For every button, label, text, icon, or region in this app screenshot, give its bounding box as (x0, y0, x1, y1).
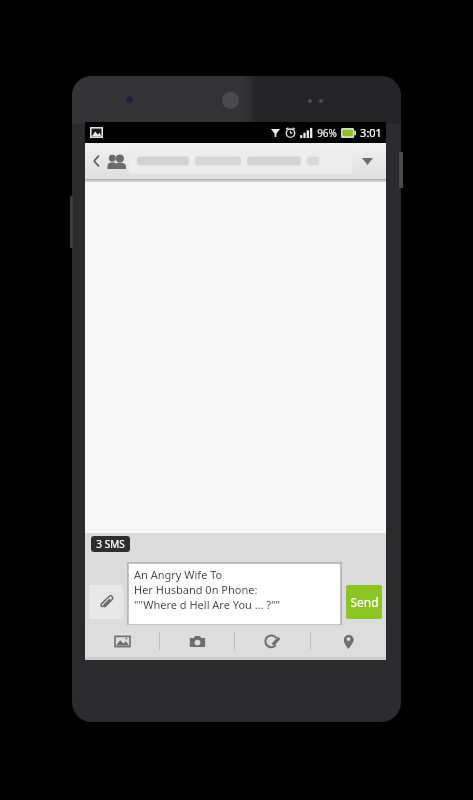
button[interactable] (129, 148, 352, 174)
staticText: 3 SMS (96, 537, 125, 551)
staticText: An Angry Wife To (134, 567, 223, 582)
staticText: Her Husband 0n Phone: (134, 582, 258, 597)
button[interactable]: Back (89, 143, 103, 179)
button[interactable]: Camera (160, 625, 234, 657)
button[interactable]: An Angry Wife To (128, 563, 341, 625)
staticText: ""Where d Hell Are You … ?"" (134, 597, 281, 612)
button[interactable]: Show recipients (352, 143, 382, 179)
staticText: 96% (317, 126, 337, 140)
button[interactable]: Draw (235, 625, 310, 657)
staticText: 3:01 (360, 125, 382, 140)
button[interactable]: Send (346, 585, 382, 619)
button[interactable]: Attach (89, 585, 123, 619)
button[interactable]: Location (311, 625, 386, 657)
button[interactable]: Contacts (103, 143, 129, 179)
button[interactable]: Gallery (85, 625, 159, 657)
staticText: Send (350, 594, 379, 610)
